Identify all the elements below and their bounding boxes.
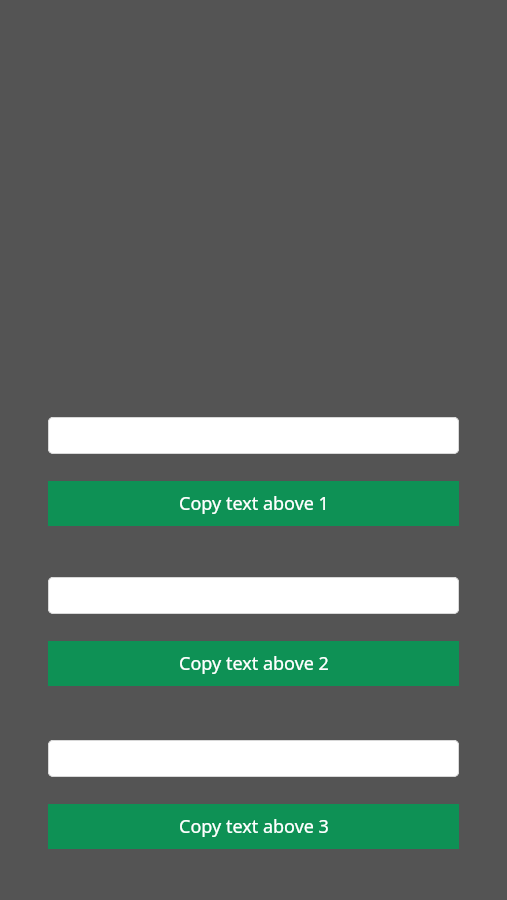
staticText: Copy text above 3 (179, 814, 329, 839)
button[interactable]: Copy text above 1 (48, 481, 459, 526)
staticText: Copy text above 1 (179, 491, 329, 516)
button[interactable]: Copy text above 2 (48, 641, 459, 686)
button[interactable] (48, 740, 459, 777)
button[interactable] (48, 417, 459, 454)
staticText: Copy text above 2 (179, 651, 329, 676)
button[interactable] (48, 577, 459, 614)
button[interactable]: Copy text above 3 (48, 804, 459, 849)
